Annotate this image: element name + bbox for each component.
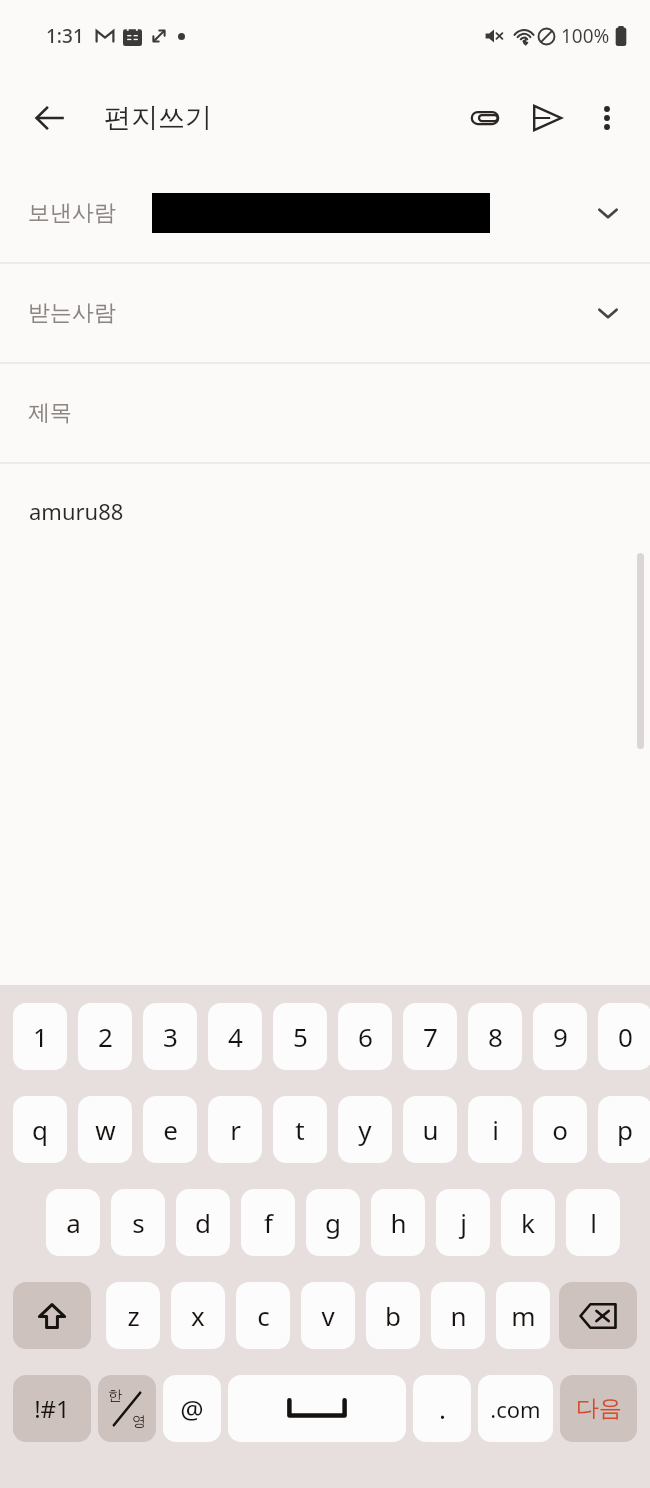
button[interactable]: d xyxy=(176,1189,230,1256)
staticText: 7 xyxy=(423,1019,438,1054)
button[interactable]: Back xyxy=(22,90,78,146)
button[interactable]: 받는사람 xyxy=(0,264,650,362)
button[interactable]: . xyxy=(413,1375,471,1442)
button[interactable]: Expand xyxy=(580,285,636,341)
staticText: b xyxy=(385,1298,401,1333)
staticText: s xyxy=(132,1205,145,1240)
staticText: i xyxy=(492,1112,499,1147)
staticText: q xyxy=(32,1112,48,1147)
staticText: .com xyxy=(490,1394,541,1424)
button[interactable]: Space xyxy=(228,1375,406,1442)
staticText: n xyxy=(450,1298,467,1333)
button[interactable]: e xyxy=(143,1096,197,1163)
staticText: amuru88 xyxy=(29,496,124,526)
staticText: w xyxy=(95,1112,116,1147)
button[interactable]: w xyxy=(78,1096,132,1163)
button[interactable]: 4 xyxy=(208,1003,262,1070)
staticText: y xyxy=(358,1112,372,1147)
staticText: 보낸사람 xyxy=(28,199,116,227)
staticText: d xyxy=(195,1205,211,1240)
staticText: 100% xyxy=(561,23,610,49)
staticText: 4 xyxy=(228,1019,243,1054)
button[interactable]: o xyxy=(533,1096,587,1163)
staticText: 제목 xyxy=(28,399,72,427)
button[interactable]: 0 xyxy=(598,1003,650,1070)
staticText: 5 xyxy=(293,1019,308,1054)
staticText: p xyxy=(617,1112,633,1147)
button[interactable]: More options xyxy=(578,89,636,147)
button[interactable]: l xyxy=(566,1189,620,1256)
button[interactable]: i xyxy=(468,1096,522,1163)
button[interactable]: Backspace xyxy=(559,1282,637,1349)
button[interactable]: 제목 xyxy=(0,364,650,462)
button[interactable]: 8 xyxy=(468,1003,522,1070)
staticText: h xyxy=(390,1205,407,1240)
button[interactable]: n xyxy=(431,1282,485,1349)
button[interactable]: f xyxy=(241,1189,295,1256)
staticText: 다음 xyxy=(576,1394,622,1423)
staticText: @ xyxy=(180,1391,204,1426)
staticText: z xyxy=(127,1298,140,1333)
staticText: 3 xyxy=(163,1019,178,1054)
staticText: 9 xyxy=(553,1019,568,1054)
staticText: . xyxy=(439,1391,446,1426)
button[interactable]: y xyxy=(338,1096,392,1163)
button[interactable]: 3 xyxy=(143,1003,197,1070)
button[interactable]: 9 xyxy=(533,1003,587,1070)
button[interactable]: Language xyxy=(98,1375,156,1442)
button[interactable]: 다음 xyxy=(560,1375,637,1442)
button[interactable]: 보낸사람 xyxy=(0,164,650,262)
button[interactable]: s xyxy=(111,1189,165,1256)
button[interactable]: 1 xyxy=(13,1003,67,1070)
staticText: j xyxy=(460,1205,467,1240)
button[interactable]: Send xyxy=(516,87,578,149)
staticText: 한 xyxy=(108,1387,122,1405)
button[interactable]: k xyxy=(501,1189,555,1256)
button[interactable]: b xyxy=(366,1282,420,1349)
button[interactable]: p xyxy=(598,1096,650,1163)
staticText: l xyxy=(590,1205,597,1240)
staticText: a xyxy=(66,1205,81,1240)
button[interactable]: v xyxy=(301,1282,355,1349)
button[interactable]: 7 xyxy=(403,1003,457,1070)
staticText: 2 xyxy=(98,1019,113,1054)
button[interactable]: 6 xyxy=(338,1003,392,1070)
button[interactable]: Shift xyxy=(13,1282,91,1349)
button[interactable]: h xyxy=(371,1189,425,1256)
button[interactable]: @ xyxy=(163,1375,221,1442)
button[interactable]: 5 xyxy=(273,1003,327,1070)
staticText: v xyxy=(321,1298,335,1333)
button[interactable]: !#1 xyxy=(13,1375,91,1442)
button[interactable]: t xyxy=(273,1096,327,1163)
button[interactable]: z xyxy=(106,1282,160,1349)
button[interactable]: m xyxy=(496,1282,550,1349)
staticText: g xyxy=(325,1205,341,1240)
button[interactable]: Attach file xyxy=(454,87,516,149)
staticText: 6 xyxy=(358,1019,373,1054)
staticText: u xyxy=(422,1112,439,1147)
staticText: e xyxy=(163,1112,178,1147)
button[interactable]: 2 xyxy=(78,1003,132,1070)
staticText: 1:31 xyxy=(46,23,84,49)
button[interactable]: c xyxy=(236,1282,290,1349)
staticText: r xyxy=(230,1112,241,1147)
staticText: f xyxy=(264,1205,273,1240)
staticText: 8 xyxy=(488,1019,503,1054)
button[interactable]: Expand xyxy=(580,185,636,241)
button[interactable]: j xyxy=(436,1189,490,1256)
button[interactable]: g xyxy=(306,1189,360,1256)
staticText: 편지쓰기 xyxy=(104,101,212,135)
staticText: c xyxy=(257,1298,270,1333)
button[interactable]: amuru88 xyxy=(0,464,650,979)
button[interactable]: a xyxy=(46,1189,100,1256)
button[interactable]: q xyxy=(13,1096,67,1163)
button[interactable]: u xyxy=(403,1096,457,1163)
staticText: m xyxy=(511,1298,536,1333)
button[interactable]: .com xyxy=(478,1375,553,1442)
staticText: x xyxy=(191,1298,205,1333)
staticText: !#1 xyxy=(34,1392,70,1425)
staticText: 영 xyxy=(132,1413,146,1431)
button[interactable]: r xyxy=(208,1096,262,1163)
button[interactable]: x xyxy=(171,1282,225,1349)
staticText: k xyxy=(521,1205,535,1240)
